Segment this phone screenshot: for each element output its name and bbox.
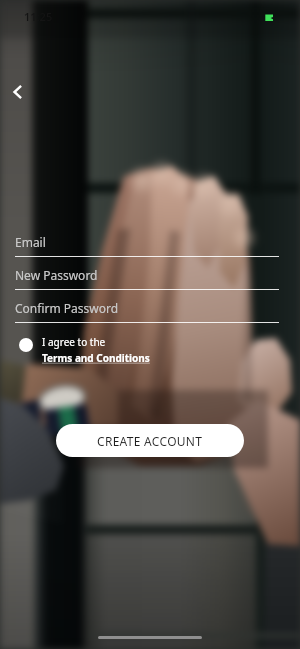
- staticText: New Password: [15, 267, 98, 283]
- button[interactable]: I agree to the: [19, 335, 150, 365]
- button[interactable]: New Password: [15, 267, 279, 290]
- staticText: 11:25: [24, 9, 53, 24]
- staticText: Confirm Password: [15, 300, 119, 316]
- staticText: Email: [15, 234, 46, 250]
- button[interactable]: CREATE ACCOUNT: [56, 424, 244, 457]
- button[interactable]: Confirm Password: [15, 300, 279, 323]
- staticText: I agree to the: [42, 335, 106, 349]
- button[interactable]: Email: [15, 234, 279, 257]
- staticText: Terms and Conditions: [42, 351, 150, 365]
- staticText: CREATE ACCOUNT: [97, 433, 203, 449]
- button[interactable]: Back: [0, 72, 38, 112]
